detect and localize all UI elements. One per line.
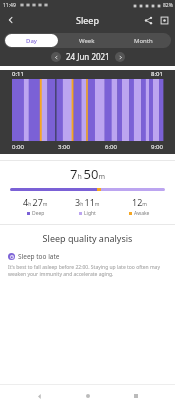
staticText: Month bbox=[134, 37, 153, 45]
button[interactable]: Week bbox=[60, 34, 114, 47]
staticText: 7h 50m bbox=[70, 165, 105, 183]
staticText: 3h 11m bbox=[75, 196, 100, 208]
staticText: 12m bbox=[132, 196, 147, 208]
button[interactable]: Day bbox=[5, 34, 58, 47]
staticText: 9:00 bbox=[151, 143, 163, 151]
button[interactable]: Back bbox=[29, 386, 49, 406]
staticText: 0:11 bbox=[12, 70, 24, 78]
button[interactable]: Save bbox=[156, 12, 172, 28]
staticText: Light bbox=[84, 210, 96, 217]
button[interactable]: Share bbox=[140, 12, 156, 28]
staticText: 8:01 bbox=[151, 70, 163, 78]
staticText: 11:49 bbox=[3, 2, 16, 9]
button[interactable]: Next day bbox=[115, 52, 125, 62]
staticText: Week bbox=[79, 37, 95, 45]
staticText: Deep bbox=[32, 210, 45, 217]
staticText: 3:00 bbox=[58, 143, 70, 151]
button[interactable]: Previous day bbox=[51, 52, 61, 62]
staticText: Awake bbox=[134, 210, 150, 217]
staticText: Day bbox=[26, 37, 37, 45]
button[interactable]: Back bbox=[3, 12, 19, 28]
staticText: 4h 27m bbox=[23, 196, 48, 208]
button[interactable]: Month bbox=[116, 34, 170, 47]
staticText: 0:00 bbox=[12, 143, 24, 151]
button[interactable]: Recent apps bbox=[126, 386, 146, 406]
button[interactable]: Home bbox=[78, 386, 98, 406]
staticText: Sleep quality analysis bbox=[8, 232, 167, 244]
staticText: Sleep bbox=[76, 14, 99, 26]
staticText: Sleep too late bbox=[18, 252, 60, 261]
staticText: 24 Jun 2021 bbox=[66, 51, 110, 62]
staticText: It's best to fall asleep before 22:00. S… bbox=[8, 264, 167, 278]
staticText: 82% bbox=[163, 2, 173, 9]
staticText: 6:00 bbox=[105, 143, 117, 151]
